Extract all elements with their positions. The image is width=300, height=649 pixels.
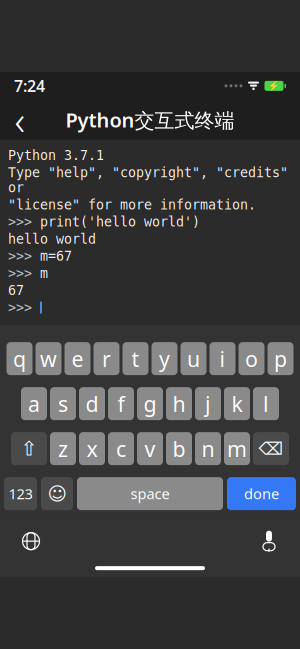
staticText: 123 — [8, 484, 32, 503]
staticText: l — [263, 389, 269, 418]
staticText: >>> — [8, 214, 40, 229]
staticText: print('hello world') — [40, 214, 200, 229]
staticText: e — [71, 344, 83, 373]
button[interactable]: Dictation — [252, 524, 286, 558]
button[interactable]: Back — [0, 100, 40, 140]
staticText: z — [58, 434, 68, 463]
button[interactable]: p — [267, 342, 293, 375]
staticText: space — [130, 484, 169, 503]
staticText: y — [159, 344, 170, 373]
staticText: p — [274, 344, 287, 373]
staticText: a — [28, 389, 40, 418]
staticText: m — [40, 266, 48, 281]
staticText: ‹ — [14, 93, 25, 146]
button[interactable]: z — [50, 432, 76, 465]
staticText: c — [116, 434, 126, 463]
staticText: f — [117, 389, 124, 418]
staticText: x — [86, 434, 97, 463]
button[interactable]: o — [238, 342, 264, 375]
staticText: >>> — [8, 300, 40, 315]
staticText: hello world — [8, 231, 96, 247]
button[interactable]: Emoji — [41, 477, 73, 510]
staticText: >>> — [8, 266, 40, 281]
button[interactable]: Shift — [11, 432, 47, 465]
staticText: j — [205, 389, 211, 418]
button[interactable]: n — [195, 432, 221, 465]
staticText: g — [143, 389, 156, 418]
staticText: done — [244, 484, 279, 503]
staticText: ⇧ — [20, 437, 37, 460]
button[interactable]: h — [166, 387, 192, 420]
staticText: i — [219, 344, 225, 373]
button[interactable]: done — [227, 477, 296, 510]
button[interactable]: x — [79, 432, 105, 465]
button[interactable]: 123 — [4, 477, 37, 510]
button[interactable]: i — [209, 342, 235, 375]
staticText: ☺ — [47, 483, 66, 504]
staticText: o — [245, 344, 258, 373]
staticText: 67 — [8, 283, 24, 298]
staticText: m=67 — [40, 249, 72, 264]
button[interactable]: t — [122, 342, 148, 375]
staticText: v — [144, 434, 155, 463]
button[interactable]: q — [6, 342, 32, 375]
button[interactable]: a — [21, 387, 47, 420]
button[interactable]: Change keyboard — [14, 524, 48, 558]
button[interactable]: space — [77, 477, 223, 510]
button[interactable]: j — [195, 387, 221, 420]
staticText: m — [227, 434, 247, 463]
staticText: q — [13, 344, 26, 373]
staticText: d — [85, 389, 98, 418]
staticText: n — [201, 434, 214, 463]
staticText: Type "help", "copyright", "credits" or — [8, 165, 288, 195]
button[interactable]: e — [64, 342, 90, 375]
staticText: b — [172, 434, 185, 463]
button[interactable]: w — [35, 342, 61, 375]
staticText: u — [187, 344, 200, 373]
staticText: Python交互式终端 — [65, 106, 234, 133]
staticText: >>> — [8, 249, 40, 264]
button[interactable]: u — [180, 342, 206, 375]
staticText: t — [131, 344, 139, 373]
button[interactable]: v — [137, 432, 163, 465]
staticText: s — [58, 389, 68, 418]
staticText: h — [172, 389, 185, 418]
button[interactable]: l — [253, 387, 279, 420]
button[interactable]: d — [79, 387, 105, 420]
staticText: w — [40, 344, 57, 373]
staticText: ⚡ — [268, 80, 280, 91]
button[interactable]: m — [224, 432, 250, 465]
button[interactable]: f — [108, 387, 134, 420]
staticText: ⌫ — [258, 439, 283, 458]
staticText: "license" for more information. — [8, 197, 256, 212]
button[interactable]: y — [151, 342, 177, 375]
staticText: 7:24 — [14, 75, 45, 96]
button[interactable]: c — [108, 432, 134, 465]
staticText: k — [231, 389, 242, 418]
button[interactable]: b — [166, 432, 192, 465]
button[interactable]: r — [93, 342, 119, 375]
button[interactable]: Delete — [253, 432, 289, 465]
staticText: r — [102, 344, 111, 373]
button[interactable]: s — [50, 387, 76, 420]
button[interactable]: g — [137, 387, 163, 420]
staticText: Python 3.7.1 — [8, 148, 104, 163]
button[interactable]: k — [224, 387, 250, 420]
